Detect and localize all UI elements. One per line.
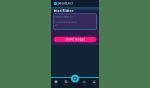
staticText: Profile bbox=[91, 84, 96, 86]
button[interactable]: Plan bbox=[79, 78, 89, 88]
staticText: Home bbox=[54, 84, 58, 86]
button[interactable]: Create Recipe bbox=[54, 37, 96, 42]
staticText: What would you like to cook? bbox=[55, 16, 73, 18]
staticText: Create Recipe bbox=[64, 38, 85, 41]
staticText: Smart Kitchen bbox=[54, 9, 74, 13]
staticText: fry bbox=[55, 24, 57, 26]
button[interactable]: Home bbox=[51, 78, 61, 88]
staticText: SmartChef bbox=[58, 2, 73, 5]
staticText: Try: chicken teriyaki, pasta, or stir bbox=[55, 21, 77, 23]
button[interactable]: Scan ingredients bbox=[71, 75, 79, 83]
staticText: Plan bbox=[82, 84, 85, 86]
button[interactable]: Recipes bbox=[61, 78, 71, 88]
button[interactable]: Profile bbox=[89, 78, 99, 88]
staticText: Recipes bbox=[63, 84, 69, 86]
button[interactable]: SmartChef bbox=[54, 2, 73, 5]
